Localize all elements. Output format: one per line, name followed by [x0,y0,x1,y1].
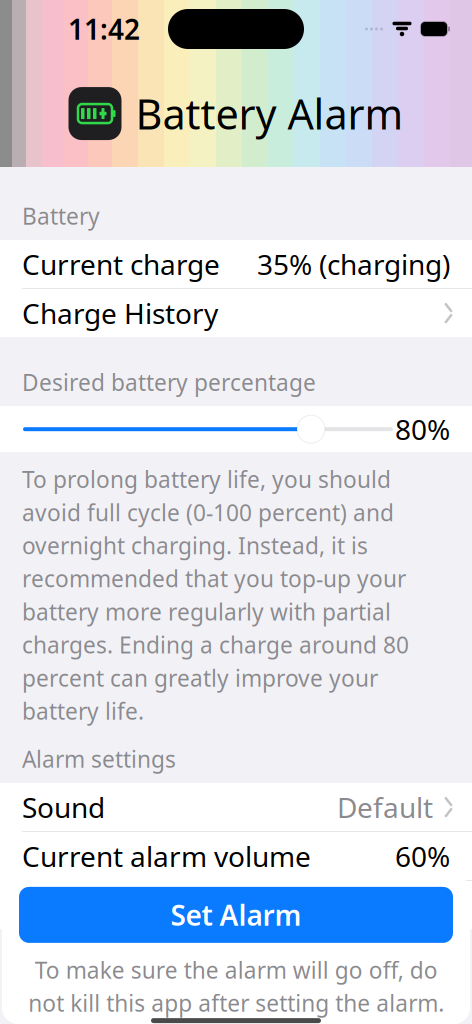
staticText: Advanced Settings [22,886,262,924]
staticText: Sound [22,788,105,826]
staticText: Battery Alarm [135,86,403,141]
staticText: Desired battery percentage [22,367,316,397]
staticText: Charge History [22,294,218,332]
staticText: 35% (charging) [257,245,450,283]
staticText: 60% [395,837,450,875]
staticText: Default [337,788,433,826]
staticText: Current charge [22,245,220,283]
staticText: Alarm settings [22,744,176,774]
staticText: Battery [22,201,100,231]
staticText: Set Alarm [170,896,301,933]
button[interactable]: Set Alarm [19,887,453,943]
button[interactable]: Sound [0,783,472,831]
staticText: To prolong battery life, you should avoi… [22,464,409,726]
staticText: Current alarm volume [22,837,311,875]
button[interactable]: Advanced Settings [0,881,472,929]
staticText: 11:42 [68,10,140,48]
staticText: To make sure the alarm will go off, do n… [28,955,444,1018]
button[interactable]: Charge History [0,289,472,337]
staticText: 80% [395,411,450,448]
